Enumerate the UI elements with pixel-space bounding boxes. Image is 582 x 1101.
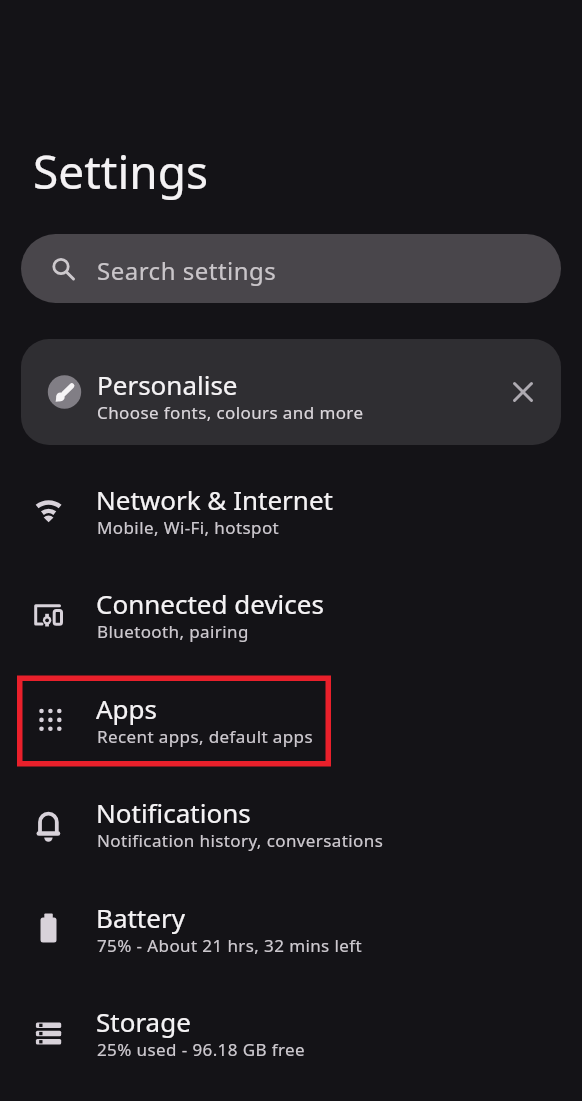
- button[interactable]: [0, 563, 582, 667]
- button[interactable]: [0, 877, 582, 981]
- staticText: Notification history, conversations: [97, 829, 384, 852]
- staticText: Settings: [33, 140, 209, 203]
- button[interactable]: [0, 459, 582, 563]
- button[interactable]: [0, 772, 582, 876]
- staticText: Personalise: [97, 367, 238, 402]
- staticText: 25% used - 96.18 GB free: [97, 1038, 306, 1061]
- button[interactable]: [0, 981, 582, 1085]
- staticText: Mobile, Wi-Fi, hotspot: [97, 516, 280, 539]
- button[interactable]: [21, 234, 561, 303]
- staticText: Connected devices: [96, 586, 324, 621]
- button[interactable]: [0, 668, 582, 772]
- staticText: Apps: [96, 691, 158, 726]
- staticText: Recent apps, default apps: [97, 725, 314, 748]
- staticText: Notifications: [96, 795, 251, 830]
- staticText: Network & Internet: [96, 482, 333, 517]
- button[interactable]: [501, 370, 545, 414]
- staticText: Battery: [96, 900, 185, 935]
- staticText: Choose fonts, colours and more: [97, 401, 364, 424]
- staticText: Bluetooth, pairing: [97, 620, 249, 643]
- staticText: Storage: [96, 1004, 191, 1039]
- staticText: Search settings: [97, 254, 277, 287]
- button[interactable]: [21, 339, 561, 445]
- staticText: 75% - About 21 hrs, 32 mins left: [97, 934, 363, 957]
